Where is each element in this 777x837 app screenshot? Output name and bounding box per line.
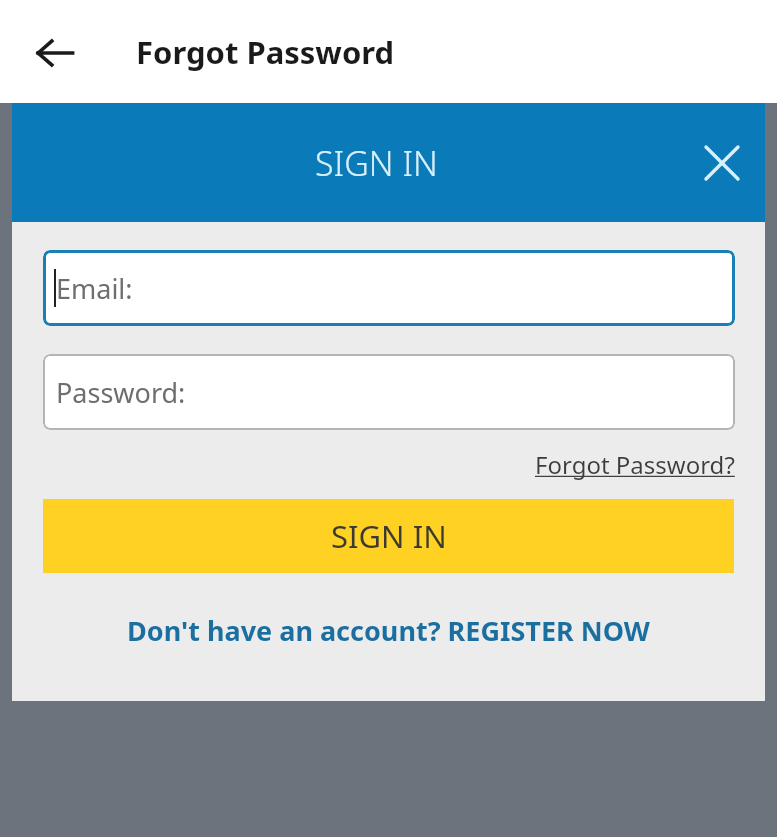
- staticText: Forgot Password?: [535, 448, 735, 481]
- staticText: Don't have an account? REGISTER NOW: [127, 612, 650, 649]
- button[interactable]: Don't have an account? REGISTER NOW: [127, 612, 650, 649]
- button[interactable]: Close: [691, 132, 753, 194]
- staticText: Email:: [56, 270, 133, 307]
- staticText: Password:: [56, 374, 186, 411]
- button[interactable]: Email:: [43, 250, 735, 326]
- staticText: SIGN IN: [315, 140, 438, 186]
- staticText: Forgot Password: [136, 31, 395, 73]
- button[interactable]: Forgot Password?: [535, 448, 735, 481]
- staticText: SIGN IN: [331, 515, 447, 557]
- button[interactable]: Password:: [43, 354, 735, 430]
- button[interactable]: SIGN IN: [43, 499, 734, 573]
- button[interactable]: Back: [22, 20, 88, 86]
